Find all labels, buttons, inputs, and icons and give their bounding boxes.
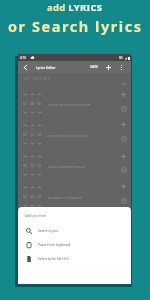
button[interactable]: Add line <box>119 120 128 129</box>
button[interactable]: Increase <box>29 123 35 127</box>
button[interactable]: Increase <box>36 92 42 96</box>
button[interactable]: Decrease <box>29 110 35 114</box>
staticText: Select lyrics file (.lrc) <box>38 256 69 260</box>
button[interactable]: Increase <box>29 92 35 96</box>
staticText: Add lyrics from <box>25 214 47 218</box>
button[interactable]: Increase <box>29 154 35 158</box>
staticText: consectetur adipiscing elit <box>48 133 89 137</box>
button[interactable]: Decrease <box>22 203 28 207</box>
staticText: 73 <box>30 163 35 168</box>
staticText: 80 <box>37 101 42 106</box>
button[interactable]: incididunt ut labore et <box>48 193 118 200</box>
staticText: or Search lyrics <box>8 16 143 36</box>
button[interactable]: Search Lyrics <box>18 223 131 237</box>
button[interactable]: Increase <box>29 185 35 189</box>
staticText: Lorem ipsum dolor sit amet <box>48 102 91 106</box>
button[interactable]: Select lyrics file (.lrc) <box>18 251 131 265</box>
button[interactable]: Lorem ipsum dolor sit amet <box>48 100 118 107</box>
button[interactable]: Add line <box>119 90 128 99</box>
button[interactable]: Add <box>104 63 113 72</box>
button[interactable]: Decrease <box>36 203 42 207</box>
button[interactable]: Expand <box>119 79 128 88</box>
button[interactable]: Add line <box>119 182 128 191</box>
button[interactable]: Set time <box>119 104 128 113</box>
button[interactable]: Decrease <box>36 172 42 176</box>
staticText: 28 <box>30 101 35 106</box>
button[interactable]: Decrease <box>22 141 28 145</box>
staticText: 00 <box>23 132 28 137</box>
button[interactable]: Increase <box>22 123 28 127</box>
button[interactable]: sed do eiusmod tempor <box>48 162 118 169</box>
button[interactable]: Paste from clipboard <box>18 237 131 251</box>
staticText: 13 <box>30 132 35 137</box>
staticText: sed do eiusmod tempor <box>48 164 86 168</box>
button[interactable]: Decrease <box>36 110 42 114</box>
button[interactable]: Back <box>21 63 30 72</box>
staticText: SAVE <box>90 65 99 69</box>
button[interactable]: SAVE <box>89 61 100 73</box>
button[interactable]: Increase <box>36 185 42 189</box>
button[interactable]: Increase <box>36 154 42 158</box>
button[interactable]: Decrease <box>36 141 42 145</box>
staticText: 22 <box>30 194 35 199</box>
button[interactable]: consectetur adipiscing elit <box>48 131 118 138</box>
staticText: add LYRICS <box>47 1 103 14</box>
button[interactable]: Decrease <box>22 110 28 114</box>
button[interactable]: Increase <box>22 185 28 189</box>
button[interactable]: Set time <box>119 134 128 143</box>
button[interactable]: More options <box>117 63 126 72</box>
staticText: incididunt ut labore et <box>48 195 83 199</box>
button[interactable]: Add line <box>119 152 128 161</box>
button[interactable]: Increase <box>22 92 28 96</box>
button[interactable]: Decrease <box>22 172 28 176</box>
button[interactable]: Set time <box>119 196 128 205</box>
staticText: Search Lyrics <box>38 228 59 232</box>
staticText: 28 <box>37 132 42 137</box>
button[interactable]: Decrease <box>29 203 35 207</box>
staticText: 5G <box>119 56 123 60</box>
staticText: Lyrics Editor <box>36 65 56 70</box>
staticText: 00 <box>23 194 28 199</box>
staticText: 00 <box>23 101 28 106</box>
staticText: Paste from clipboard <box>38 242 71 246</box>
staticText: 34 <box>37 194 42 199</box>
staticText: EDIT LYRICS INFO <box>24 77 51 81</box>
button[interactable]: Increase <box>22 154 28 158</box>
staticText: 72 <box>37 163 42 168</box>
staticText: 00 <box>23 163 28 168</box>
button[interactable]: Decrease <box>29 141 35 145</box>
staticText: 4:13 <box>20 56 26 60</box>
button[interactable]: Decrease <box>29 172 35 176</box>
button[interactable]: Set time <box>119 165 128 174</box>
button[interactable]: Increase <box>36 123 42 127</box>
